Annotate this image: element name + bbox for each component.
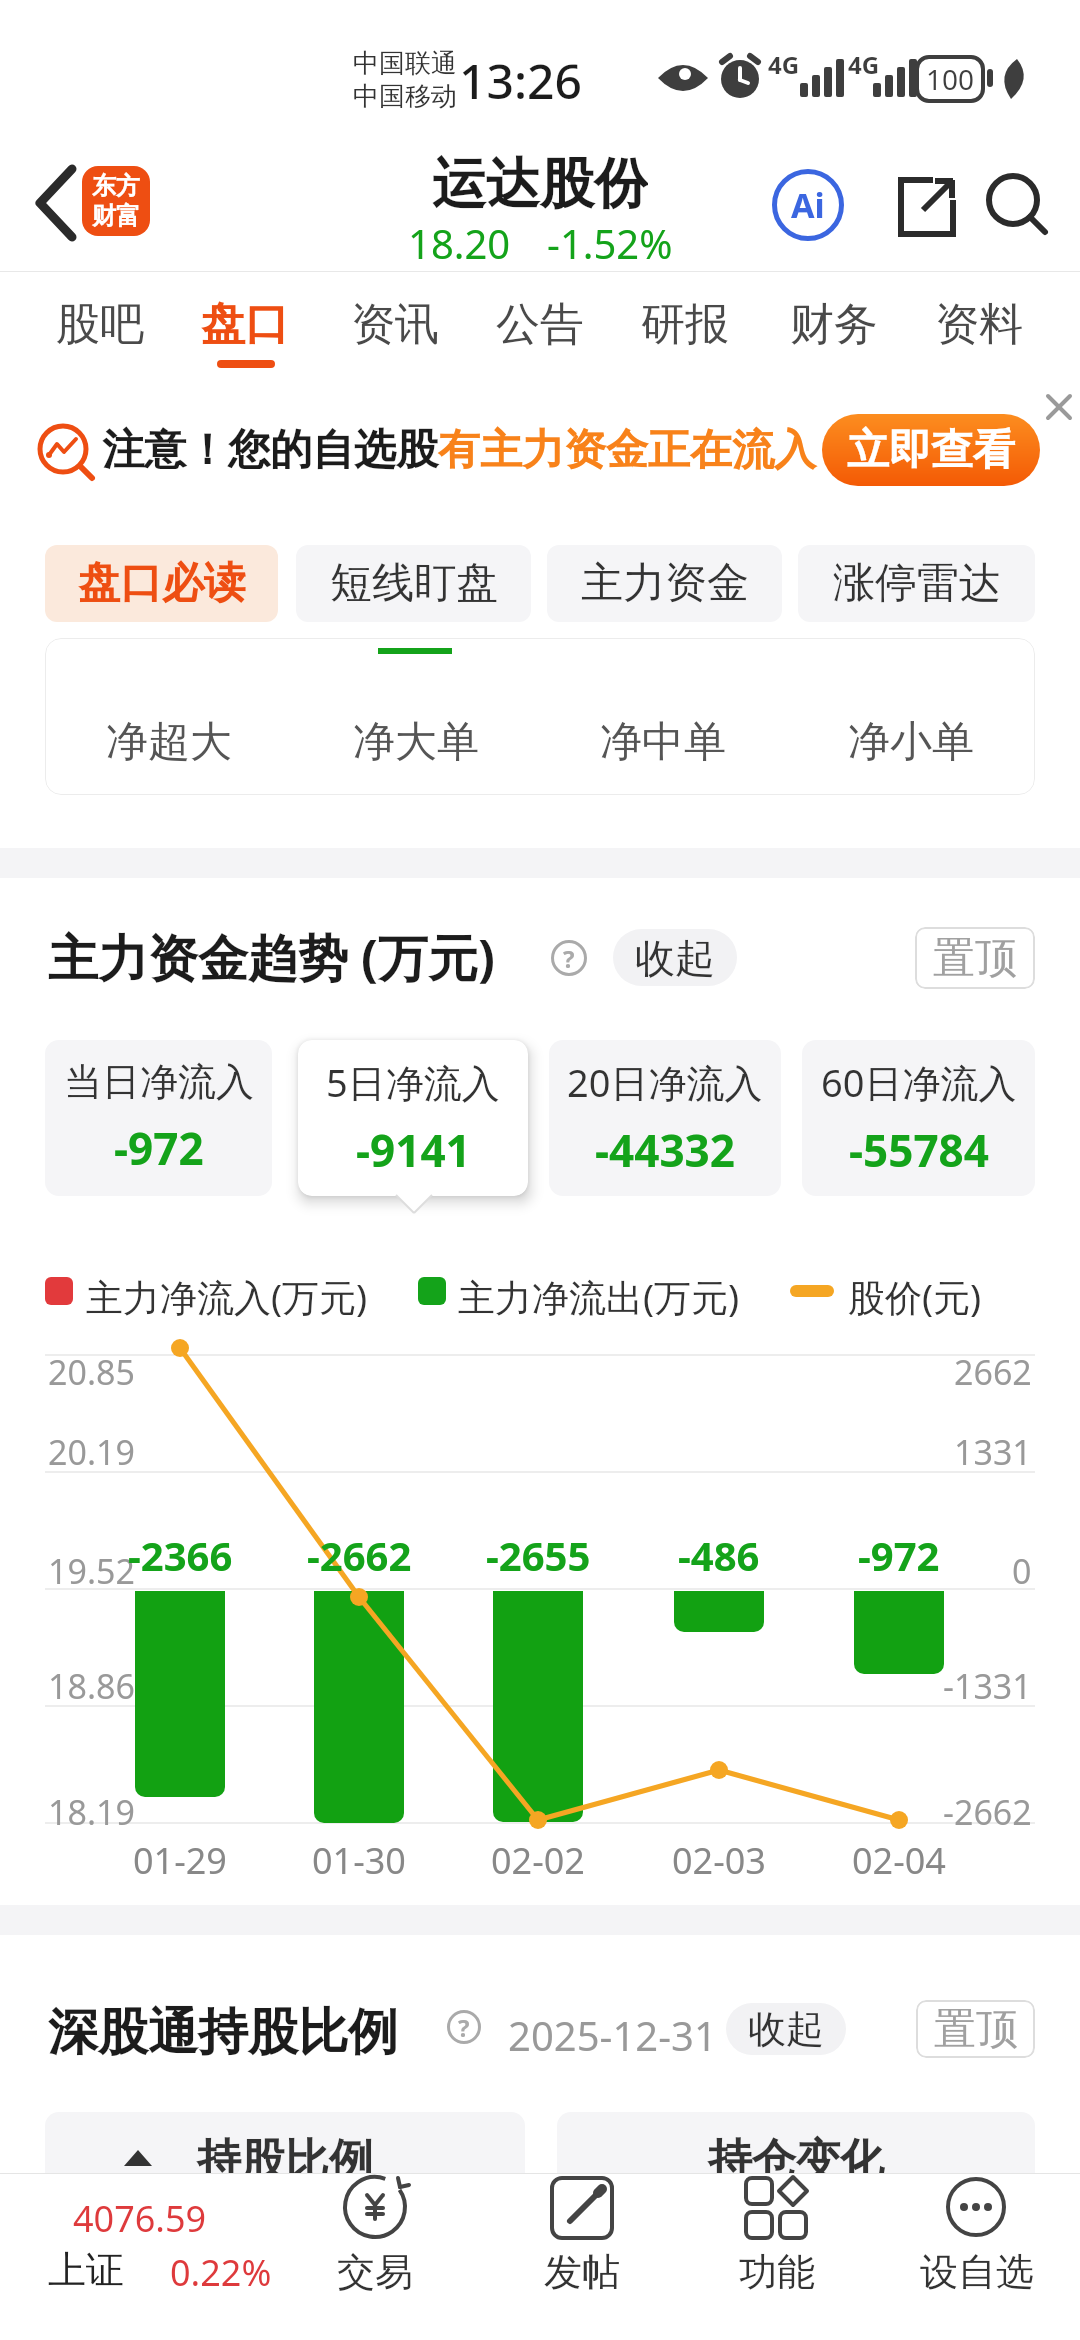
staticText: 主力净流入(万元) [86,1271,368,1322]
staticText: -55784 [849,1120,989,1180]
staticText: 主力资金趋势 (万元) [48,923,495,991]
staticText: ? [563,942,575,975]
staticText: 涨停雷达 [833,557,1001,610]
staticText: -9141 [356,1120,471,1180]
staticText: 01-29 [133,1836,227,1884]
staticText: -972 [858,1528,940,1578]
staticText: 主力净流出(万元) [458,1271,740,1322]
staticText: 4G [848,48,880,81]
staticText: 东方 [92,171,140,201]
staticText: -1331 [943,1663,1032,1709]
staticText: -1.52% [547,216,673,262]
staticText: 100 [926,60,975,98]
staticText: Ai [791,182,825,228]
staticText: 发帖 [544,2248,620,2296]
staticText: 净小单 [848,716,974,769]
staticText: 20日净流入 [567,1056,763,1108]
staticText: 中国联通 [353,47,457,80]
staticText: 18.20 [408,216,511,262]
staticText: 中国移动 [353,80,457,113]
staticText: -2655 [486,1528,591,1578]
staticText: 1331 [954,1429,1032,1475]
staticText: 20.19 [48,1429,135,1475]
staticText: 股吧 [56,297,144,352]
staticText: 60日净流入 [821,1056,1017,1108]
staticText: 持股比例 [197,2133,373,2188]
staticText: 功能 [739,2248,815,2296]
staticText: 18.86 [48,1663,135,1709]
staticText: 主力资金 [581,557,749,610]
staticText: 5日净流入 [326,1056,500,1108]
staticText: -2662 [307,1528,412,1578]
staticText: 13:26 [459,48,582,113]
staticText: 净大单 [353,716,479,769]
staticText: 注意！您的自选股 [102,424,438,477]
staticText: 持仓变化 [708,2133,884,2188]
staticText: 盘口 [201,297,289,352]
staticText: 收起 [748,2005,824,2053]
staticText: -972 [114,1118,204,1178]
staticText: 深股通持股比例 [48,2001,398,2064]
staticText: 资讯 [351,297,439,352]
staticText: 19.52 [48,1548,135,1594]
staticText: 4076.59 [73,2194,207,2242]
staticText: 0 [1012,1548,1032,1594]
staticText: -486 [678,1528,760,1578]
staticText: 短线盯盘 [330,557,498,610]
staticText: 有主力资金正在流入 [438,424,816,477]
staticText: 财务 [790,297,878,352]
staticText: 交易 [337,2248,413,2296]
staticText: 净超大 [106,716,232,769]
staticText: -2366 [128,1528,233,1578]
staticText: 02-04 [852,1836,946,1884]
staticText: 02-03 [672,1836,766,1884]
staticText: 当日净流入 [64,1058,254,1106]
staticText: 02-02 [491,1836,585,1884]
staticText: 净中单 [600,716,726,769]
staticText: 公告 [496,297,584,352]
staticText: 设自选 [920,2248,1034,2296]
staticText: 0.22% [170,2248,272,2297]
staticText: ? [458,2011,470,2044]
staticText: -2662 [943,1789,1032,1835]
staticText: 收起 [635,933,715,983]
staticText: 财富 [92,201,140,231]
staticText: 置顶 [934,2003,1018,2056]
staticText: 20.85 [48,1349,135,1395]
staticText: 01-30 [312,1836,406,1884]
staticText: 2662 [954,1349,1032,1395]
staticText: 置顶 [933,932,1017,985]
staticText: 运达股份 [432,150,648,216]
staticText: 资料 [935,297,1023,352]
staticText: 2025-12-31 [508,2008,717,2062]
staticText: 立即查看 [847,424,1015,477]
staticText: 上证 [48,2246,124,2294]
staticText: 盘口必读 [78,557,246,610]
staticText: 研报 [641,297,729,352]
staticText: 18.19 [48,1789,135,1835]
staticText: -44332 [595,1120,735,1180]
staticText: 股价(元) [848,1271,982,1322]
staticText: 4G [768,48,800,81]
